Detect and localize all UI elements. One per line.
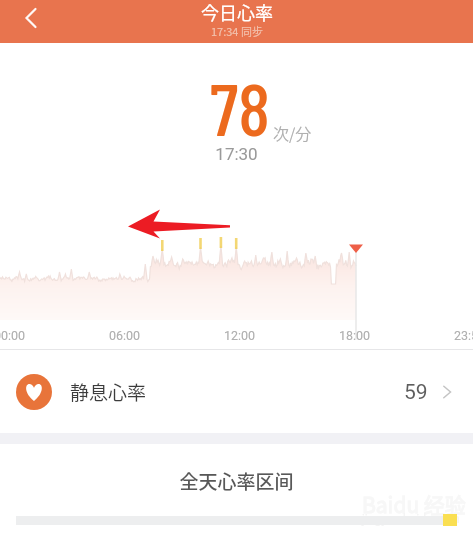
staticText: 静息心率: [70, 378, 147, 406]
staticText: jingyan.baidu.com: [362, 512, 460, 526]
staticText: 全天心率区间: [0, 467, 473, 495]
staticText: 17:34 同步: [211, 23, 263, 39]
staticText: 78: [210, 62, 270, 151]
button[interactable]: Back: [10, 0, 52, 42]
staticText: 12:00: [224, 328, 256, 343]
staticText: 次/分: [273, 121, 312, 144]
staticText: 59: [404, 380, 428, 405]
staticText: 06:00: [109, 328, 141, 343]
staticText: 今日心率: [201, 0, 273, 25]
button[interactable]: 静息心率: [0, 364, 473, 420]
staticText: Baidu 经验: [362, 489, 466, 519]
staticText: 23:59: [454, 328, 473, 343]
staticText: 17:30: [0, 144, 473, 164]
staticText: 00:00: [0, 328, 26, 343]
staticText: 18:00: [339, 328, 371, 343]
